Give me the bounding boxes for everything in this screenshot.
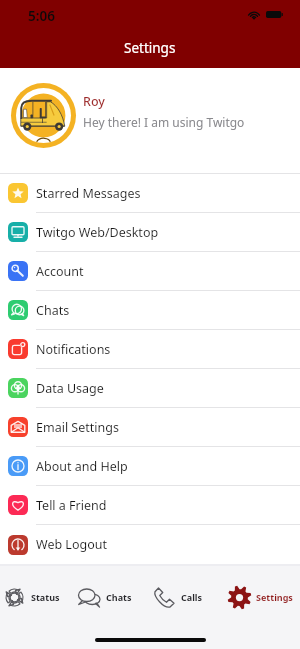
staticText: Calls — [181, 591, 203, 603]
button[interactable]: Data Usage — [0, 369, 300, 407]
button[interactable]: Email Settings — [0, 408, 300, 446]
staticText: Starred Messages — [36, 185, 141, 202]
button[interactable]: Roy — [0, 68, 300, 173]
staticText: Twitgo Web/Desktop — [36, 224, 159, 241]
staticText: Hey there! I am using Twitgo — [83, 114, 245, 130]
staticText: Account — [36, 263, 84, 280]
button[interactable]: Web Logout — [0, 525, 300, 564]
staticText: 5:06 — [28, 7, 55, 25]
button[interactable]: Calls — [150, 573, 225, 621]
button[interactable]: Starred Messages — [0, 174, 300, 212]
staticText: Chats — [36, 302, 70, 319]
staticText: Settings — [256, 591, 293, 603]
button[interactable]: Tell a Friend — [0, 486, 300, 524]
staticText: Email Settings — [36, 419, 119, 436]
button[interactable]: Status — [0, 573, 75, 621]
button[interactable]: Account — [0, 252, 300, 290]
button[interactable]: Settings — [225, 573, 300, 621]
button[interactable]: Twitgo Web/Desktop — [0, 213, 300, 251]
staticText: Tell a Friend — [36, 497, 107, 514]
staticText: Web Logout — [36, 536, 107, 553]
staticText: Roy — [83, 93, 105, 110]
button[interactable]: About and Help — [0, 447, 300, 485]
staticText: Chats — [106, 591, 132, 603]
staticText: Settings — [124, 39, 176, 57]
staticText: About and Help — [36, 458, 128, 475]
staticText: Notifications — [36, 341, 111, 358]
button[interactable]: Notifications — [0, 330, 300, 368]
staticText: Data Usage — [36, 380, 104, 397]
button[interactable]: Chats — [75, 573, 150, 621]
staticText: Status — [31, 591, 60, 603]
button[interactable]: Chats — [0, 291, 300, 329]
